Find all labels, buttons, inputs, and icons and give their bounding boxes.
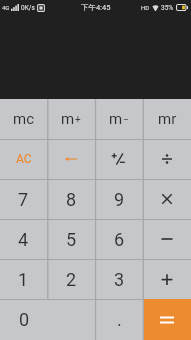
staticText: 2	[66, 269, 77, 290]
staticText: 3	[114, 269, 125, 290]
button[interactable]: Equals	[143, 299, 191, 340]
button[interactable]: 0	[0, 299, 95, 340]
button[interactable]: Multiply	[143, 179, 191, 219]
staticText: 4	[18, 229, 29, 250]
button[interactable]: 5	[47, 219, 95, 259]
button[interactable]: Plus	[143, 259, 191, 299]
staticText: 6	[114, 229, 125, 250]
staticText: 下午4:45	[81, 3, 111, 12]
button[interactable]: 9	[95, 179, 143, 219]
button[interactable]: 8	[47, 179, 95, 219]
button[interactable]: mr	[143, 99, 191, 139]
staticText: 5	[66, 229, 77, 250]
staticText: 9	[114, 189, 125, 210]
button[interactable]: 4	[0, 219, 47, 259]
button[interactable]: 1	[0, 259, 47, 299]
staticText: 0	[19, 309, 30, 330]
button[interactable]: m	[95, 99, 143, 139]
staticText: m	[109, 110, 123, 128]
button[interactable]: 2	[47, 259, 95, 299]
staticText: AC	[16, 152, 32, 166]
staticText: +	[75, 114, 81, 126]
button[interactable]: Plus minus	[95, 139, 143, 179]
staticText: 35%	[161, 4, 174, 12]
button[interactable]: Divide	[143, 139, 191, 179]
staticText: 8	[66, 189, 77, 210]
staticText: .	[117, 309, 122, 330]
staticText: mr	[158, 110, 177, 128]
staticText: HD	[141, 4, 150, 11]
staticText: m	[61, 110, 75, 128]
button[interactable]: Minus	[143, 219, 191, 259]
button[interactable]: 7	[0, 179, 47, 219]
staticText: 4G	[2, 4, 10, 11]
button[interactable]: 3	[95, 259, 143, 299]
staticText: mc	[13, 110, 35, 128]
button[interactable]: .	[95, 299, 143, 340]
button[interactable]: Backspace	[47, 139, 95, 179]
staticText: 0K/s	[21, 4, 35, 12]
staticText: 1	[18, 269, 29, 290]
staticText: 7	[18, 189, 29, 210]
button[interactable]: 6	[95, 219, 143, 259]
button[interactable]: mc	[0, 99, 47, 139]
staticText: −	[123, 114, 129, 126]
button[interactable]: m	[47, 99, 95, 139]
button[interactable]: AC	[0, 139, 47, 179]
